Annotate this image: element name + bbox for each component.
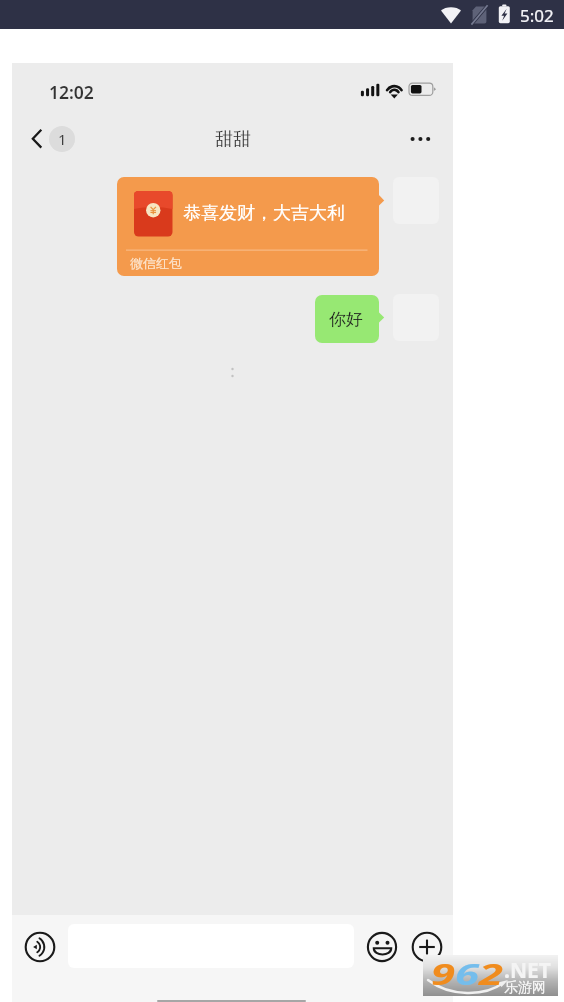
button[interactable]: Back	[20, 118, 66, 160]
button[interactable]: 1	[49, 126, 75, 152]
staticText: 9	[431, 954, 455, 993]
staticText: 你好	[329, 309, 363, 330]
button[interactable]: Voice message	[25, 932, 55, 962]
button[interactable]: 你好	[315, 295, 384, 343]
staticText: 12:02	[49, 80, 94, 104]
staticText: 乐游网	[504, 979, 546, 997]
staticText: 微信红包	[130, 255, 182, 271]
staticText: .NET	[504, 956, 551, 985]
button[interactable]: 恭喜发财，大吉大利	[117, 177, 384, 276]
staticText: 6	[455, 954, 479, 993]
button[interactable]: More functions	[411, 931, 443, 963]
button[interactable]: Emoji	[366, 931, 398, 963]
staticText: 甜甜	[215, 128, 251, 151]
staticText: 2	[479, 954, 503, 993]
staticText: 1	[58, 129, 67, 149]
button[interactable]: More options	[392, 119, 436, 159]
staticText: 5:02	[520, 4, 554, 27]
staticText: 恭喜发财，大吉大利	[183, 202, 345, 225]
